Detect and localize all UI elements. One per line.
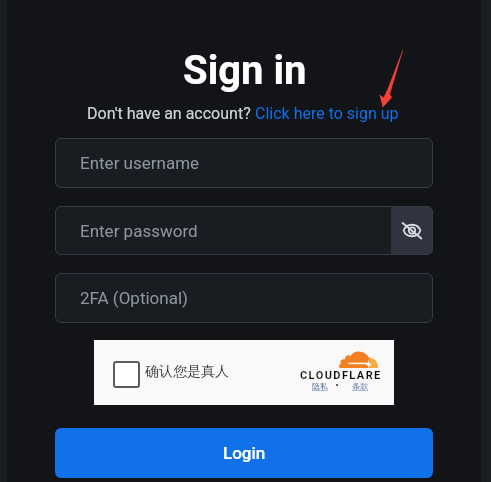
button[interactable]: Click here to sign up	[255, 104, 399, 123]
button[interactable]: Login	[55, 428, 433, 478]
button[interactable]: 条款	[352, 381, 368, 391]
button[interactable]: Enter username	[55, 138, 433, 188]
staticText: Click here to sign up	[255, 104, 399, 123]
staticText: 隐私	[312, 381, 328, 391]
button[interactable]: Verify you are human	[94, 340, 394, 405]
staticText: 条款	[352, 381, 368, 391]
button[interactable]: 隐私	[312, 381, 328, 391]
staticText: Don't have an account?	[87, 104, 255, 123]
button[interactable]: 2FA (Optional)	[55, 273, 433, 323]
staticText: Enter username	[80, 153, 200, 173]
button[interactable]: Toggle password visibility	[391, 206, 433, 255]
staticText: 确认您是真人	[145, 363, 229, 381]
staticText: 2FA (Optional)	[80, 288, 188, 308]
staticText: Enter password	[80, 221, 198, 241]
staticText: CLOUDFLARE	[300, 369, 382, 382]
staticText: Login	[223, 443, 266, 463]
button[interactable]: Enter password	[55, 206, 433, 255]
staticText: Sign in	[183, 47, 307, 94]
button[interactable]: Verify you are human	[113, 361, 140, 388]
